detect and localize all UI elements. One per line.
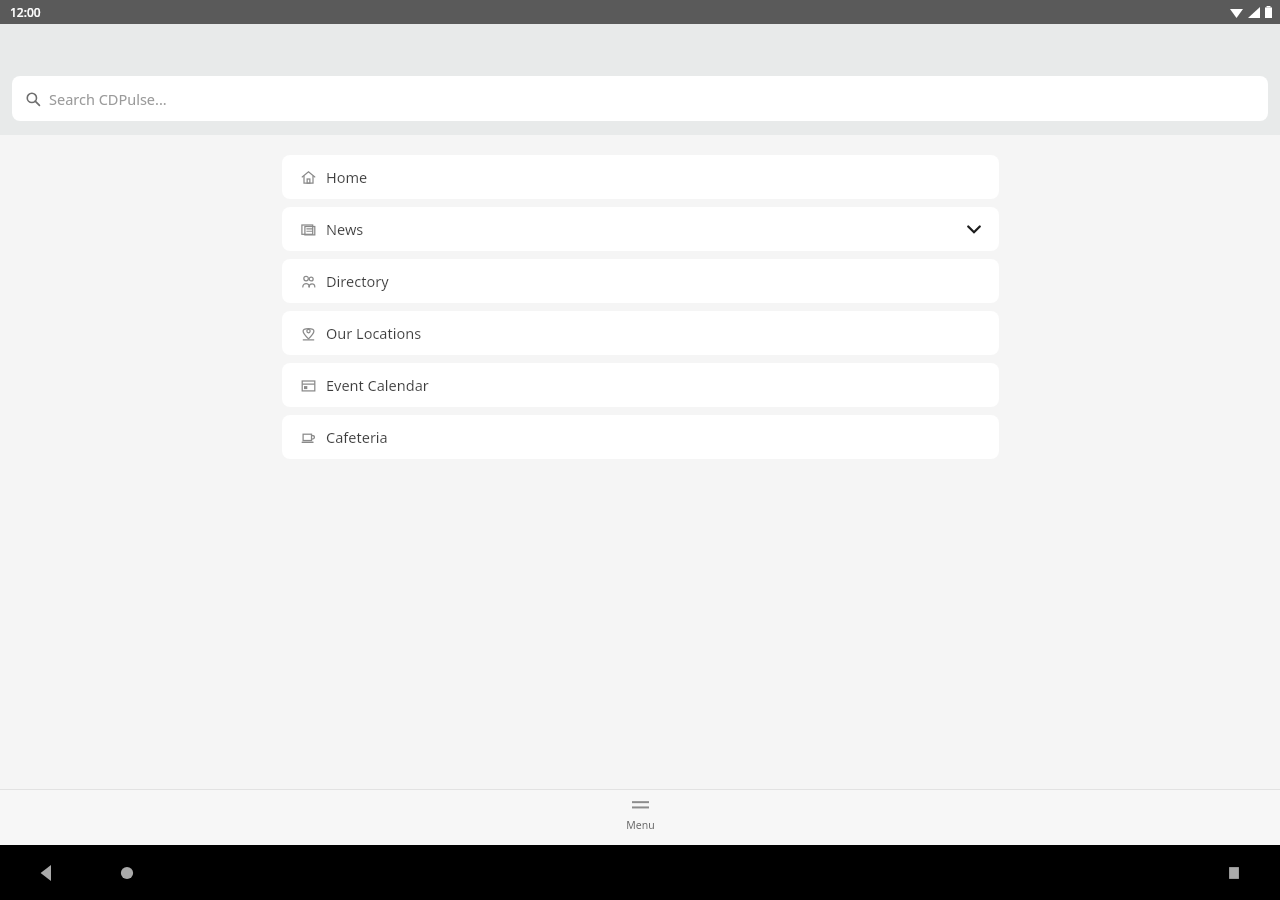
staticText: 12:00: [10, 4, 41, 20]
button[interactable]: Directory: [282, 259, 999, 303]
staticText: News: [326, 219, 364, 239]
button[interactable]: Cafeteria: [282, 415, 999, 459]
staticText: Directory: [326, 271, 389, 291]
button[interactable]: Home: [282, 155, 999, 199]
other: Expand News: [965, 220, 983, 238]
button[interactable]: News: [282, 207, 999, 251]
button[interactable]: Back: [39, 865, 55, 881]
button[interactable]: Search CDPulse...: [12, 76, 1268, 121]
staticText: Cafeteria: [326, 427, 388, 447]
other: Menu: [632, 800, 649, 812]
button[interactable]: Recent apps: [1227, 866, 1241, 880]
staticText: Our Locations: [326, 323, 422, 343]
staticText: Home: [326, 167, 368, 187]
button[interactable]: Event Calendar: [282, 363, 999, 407]
staticText: Menu: [626, 818, 655, 832]
button[interactable]: Home: [118, 864, 136, 882]
button[interactable]: Menu: [592, 790, 688, 845]
staticText: Search CDPulse...: [49, 89, 167, 109]
staticText: Event Calendar: [326, 375, 429, 395]
button[interactable]: Our Locations: [282, 311, 999, 355]
